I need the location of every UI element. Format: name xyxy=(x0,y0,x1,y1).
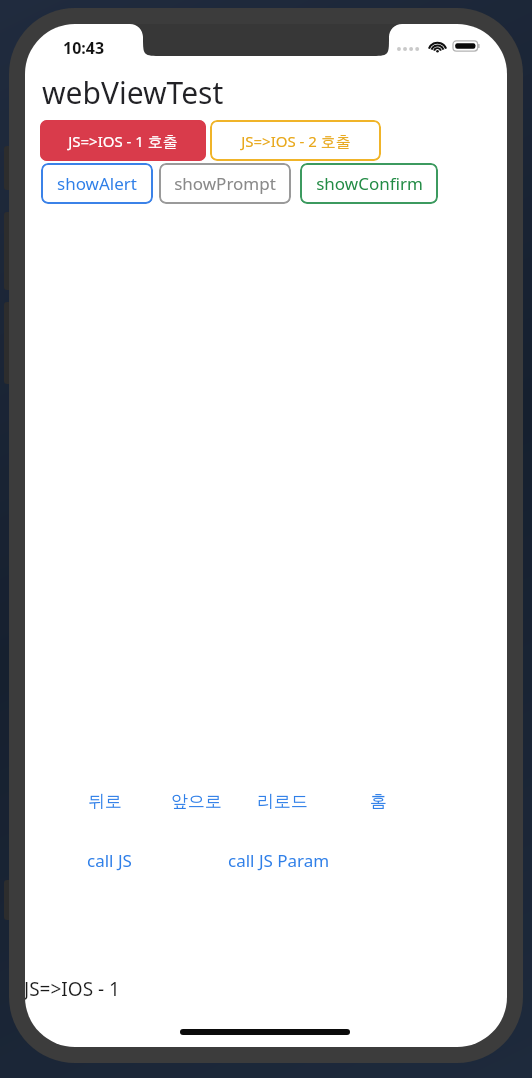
button[interactable]: JS=>IOS - 2 호출 xyxy=(210,120,381,161)
staticText: call JS xyxy=(87,849,132,872)
button[interactable]: 홈 xyxy=(368,789,389,814)
staticText: showAlert xyxy=(57,172,137,195)
staticText: JS=>IOS - 1 호출 xyxy=(68,131,178,151)
staticText: 10:43 xyxy=(63,37,105,59)
staticText: JS=>IOS - 1 xyxy=(25,976,120,1002)
staticText: JS=>IOS - 2 호출 xyxy=(241,131,351,151)
button[interactable]: showAlert xyxy=(41,163,153,204)
button[interactable]: 앞으로 xyxy=(169,789,224,814)
button[interactable]: showPrompt xyxy=(159,163,291,204)
staticText: showPrompt xyxy=(174,172,276,195)
button[interactable]: call JS xyxy=(85,847,134,874)
staticText: 홈 xyxy=(370,791,387,812)
staticText: showConfirm xyxy=(316,172,423,195)
staticText: 뒤로 xyxy=(88,791,122,812)
staticText: 리로드 xyxy=(257,791,308,812)
staticText: 앞으로 xyxy=(171,791,222,812)
button[interactable]: call JS Param xyxy=(226,847,332,874)
button[interactable]: showConfirm xyxy=(300,163,438,204)
button[interactable]: 뒤로 xyxy=(86,789,124,814)
staticText: call JS Param xyxy=(228,849,330,872)
button[interactable]: 리로드 xyxy=(255,789,310,814)
staticText: webViewTest xyxy=(42,72,224,113)
button[interactable]: JS=>IOS - 1 호출 xyxy=(40,120,206,161)
